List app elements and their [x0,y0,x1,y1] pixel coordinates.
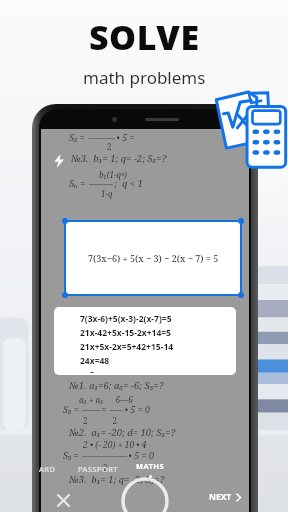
button[interactable]: Close [50,487,76,512]
staticText: №3. b₁= 1; q= -2; S₅=? [69,473,165,486]
staticText: MATHS [136,461,164,471]
staticText: NEXT [209,491,232,503]
staticText: S₅ = ⎯⎯⎯⎯ = ⎯⎯⎯ • 5 = 0 [63,403,151,415]
staticText: №3. b₁= 1; q= -2; S₅=? [71,152,167,165]
staticText: b₁(1−qⁿ) [99,169,127,180]
staticText: №1. a₁=6; a₅= -6; S₅=? [69,379,164,392]
staticText: 2 [103,462,108,473]
staticText: a₁ + a₅ 6—6 [79,394,133,405]
staticText: 2 [107,141,112,152]
button[interactable]: Flash [47,149,71,173]
staticText: S₅ = ⎯⎯⎯⎯⎯⎯⎯⎯⎯⎯ • 5 = 0 [63,449,154,461]
button[interactable]: ARD [37,462,58,476]
staticText: SOLVE [89,14,200,60]
button[interactable]: Capture [121,477,169,512]
staticText: 7(3x−6) + 5(x − 3) − 2(x − 7) = 5 [88,252,219,264]
staticText: 2 2 [83,415,117,426]
button[interactable]: PASSPORT [76,462,120,476]
staticText: PASSPORT [78,464,118,474]
staticText: S₅ = ⎯⎯⎯⎯⎯⎯ • 5 = [69,131,135,143]
staticText: №2. a₁= -20; d= 10; S₅=? [69,426,176,439]
staticText: 7(3x-6)+5(x-3)-2(x-7)=5 [80,313,172,325]
staticText: 2 • (− 20) + 10 • 4 [83,439,147,451]
button[interactable]: Math solver [196,92,288,170]
button[interactable]: MATHS [134,459,166,473]
staticText: ARD [39,464,56,474]
staticText: math problems [83,66,206,89]
staticText: 24x=48 [80,355,110,367]
staticText: 21x+5x-2x=5+42+15-14 [80,341,174,353]
staticText: 21x-42+5x-15-2x+14=5 [80,327,171,339]
staticText: Sₙ = ⎯⎯⎯⎯⎯ ; q < 1 [69,177,143,190]
staticText: 1−q [101,188,113,199]
button[interactable]: NEXT [206,489,245,505]
button[interactable]: 7(3x-6)+5(x-3)-2(x-7)=5 [54,307,236,375]
staticText: x=2 [80,369,95,373]
